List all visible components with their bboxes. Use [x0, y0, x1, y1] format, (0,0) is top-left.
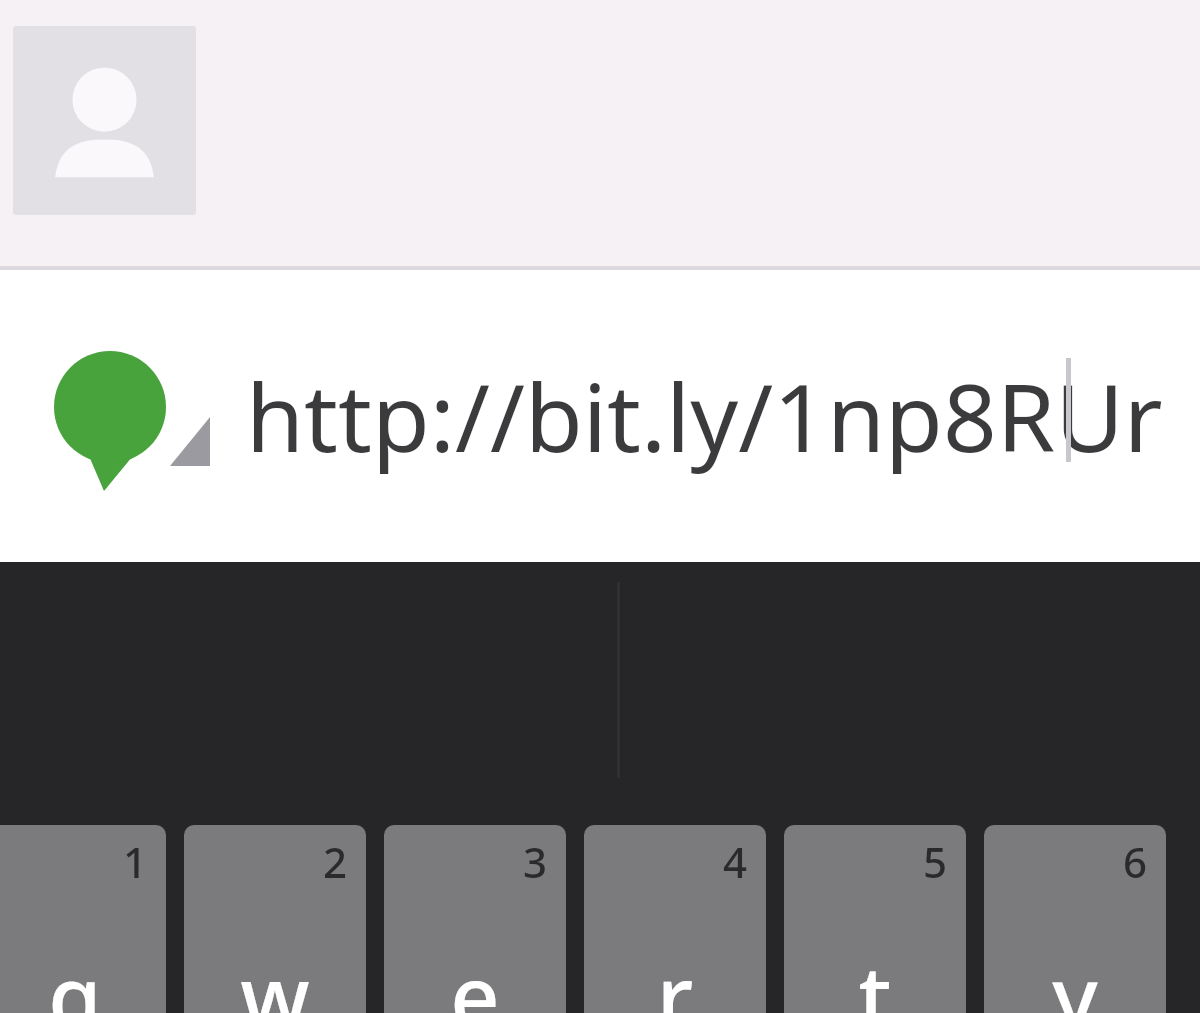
button[interactable]: 3 — [384, 825, 566, 1013]
button[interactable]: Message type, SMS — [0, 270, 1200, 562]
staticText: r — [584, 936, 766, 1013]
staticText: q — [0, 936, 166, 1013]
button[interactable]: 6 — [984, 825, 1166, 1013]
staticText: e — [384, 936, 566, 1013]
staticText: 6 — [1123, 833, 1148, 890]
staticText: y — [984, 936, 1166, 1013]
button[interactable]: 2 — [184, 825, 366, 1013]
staticText: 5 — [923, 833, 948, 890]
button[interactable]: Contact photo — [13, 26, 196, 215]
staticText: http://bit.ly/1np8RUr — [246, 352, 1163, 480]
button[interactable]: 4 — [584, 825, 766, 1013]
staticText: 2 — [323, 833, 348, 890]
staticText: t — [784, 936, 966, 1013]
staticText: w — [184, 936, 366, 1013]
staticText: 1 — [123, 833, 148, 890]
staticText: 4 — [723, 833, 748, 890]
button[interactable]: 5 — [784, 825, 966, 1013]
staticText: 3 — [523, 833, 548, 890]
button[interactable]: Message type, SMS — [46, 338, 214, 518]
button[interactable]: 1 — [0, 825, 166, 1013]
